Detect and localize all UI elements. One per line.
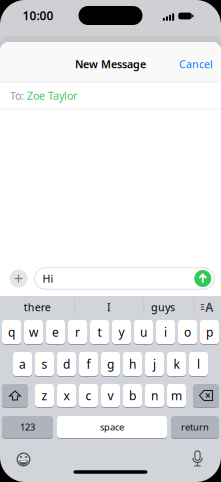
button[interactable]: I	[75, 297, 143, 317]
button[interactable]: c	[79, 383, 98, 407]
button[interactable]: guys	[139, 297, 187, 317]
staticText: c	[85, 387, 91, 403]
staticText: 123	[20, 421, 35, 433]
button[interactable]: q	[2, 319, 21, 344]
staticText: Cancel	[179, 57, 213, 71]
staticText: j	[153, 356, 156, 372]
button[interactable]: return	[171, 415, 219, 438]
staticText: l	[197, 356, 200, 372]
button[interactable]: y	[112, 319, 131, 344]
staticText: I	[107, 300, 111, 314]
button[interactable]: Cancel	[179, 57, 213, 71]
button[interactable]: e	[46, 319, 65, 344]
button[interactable]: u	[134, 319, 153, 344]
staticText: there	[24, 300, 51, 314]
button[interactable]: v	[101, 383, 120, 407]
button[interactable]: g	[101, 351, 120, 376]
button[interactable]: Add attachment	[9, 269, 27, 287]
button[interactable]: Shift	[2, 383, 28, 407]
staticText: a	[19, 356, 26, 372]
button[interactable]: x	[57, 383, 76, 407]
button[interactable]: w	[24, 319, 43, 344]
staticText: p	[206, 324, 213, 340]
button[interactable]: l	[189, 351, 208, 376]
button[interactable]: o	[178, 319, 197, 344]
button[interactable]: h	[123, 351, 142, 376]
button[interactable]: t	[90, 319, 109, 344]
staticText: m	[171, 387, 182, 403]
button[interactable]: Emoji	[15, 451, 31, 467]
staticText: u	[140, 324, 147, 340]
button[interactable]: r	[68, 319, 87, 344]
staticText: z	[41, 387, 47, 403]
staticText: k	[173, 356, 179, 372]
button[interactable]: a	[13, 351, 32, 376]
staticText: New Message	[75, 57, 146, 71]
staticText: t	[97, 324, 101, 340]
button[interactable]: i	[156, 319, 175, 344]
button[interactable]: Send	[194, 270, 211, 287]
staticText: To:	[10, 88, 24, 103]
button[interactable]: n	[145, 383, 164, 407]
staticText: e	[52, 324, 59, 340]
staticText: i	[164, 324, 167, 340]
staticText: A	[205, 299, 213, 315]
staticText: s	[41, 356, 47, 372]
staticText: space	[100, 421, 124, 433]
button[interactable]: space	[57, 415, 167, 438]
button[interactable]: j	[145, 351, 164, 376]
staticText: b	[129, 387, 136, 403]
staticText: return	[181, 421, 209, 433]
button[interactable]: Message	[34, 268, 214, 289]
staticText: v	[107, 387, 113, 403]
button[interactable]: Dictate	[189, 451, 205, 467]
button[interactable]: f	[79, 351, 98, 376]
staticText: g	[107, 356, 114, 372]
staticText: n	[151, 387, 158, 403]
button[interactable]: there	[0, 297, 74, 317]
staticText: h	[129, 356, 136, 372]
button[interactable]: b	[123, 383, 142, 407]
staticText: Hi	[42, 271, 53, 286]
staticText: q	[8, 324, 15, 340]
staticText: y	[118, 324, 124, 340]
button[interactable]: Hide predictions	[197, 297, 217, 317]
button[interactable]: p	[200, 319, 219, 344]
staticText: d	[63, 356, 70, 372]
button[interactable]: s	[35, 351, 54, 376]
staticText: r	[75, 324, 80, 340]
staticText: 10:00	[22, 7, 53, 23]
staticText: f	[86, 356, 90, 372]
staticText: guys	[151, 300, 175, 314]
staticText: w	[29, 324, 38, 340]
button[interactable]: m	[167, 383, 186, 407]
button[interactable]: d	[57, 351, 76, 376]
button[interactable]: k	[167, 351, 186, 376]
staticText: x	[63, 387, 69, 403]
button[interactable]: Delete	[193, 383, 219, 407]
staticText: Zoe Taylor	[27, 88, 77, 103]
button[interactable]: 123	[2, 415, 53, 438]
button[interactable]: z	[35, 383, 54, 407]
staticText: o	[184, 324, 191, 340]
